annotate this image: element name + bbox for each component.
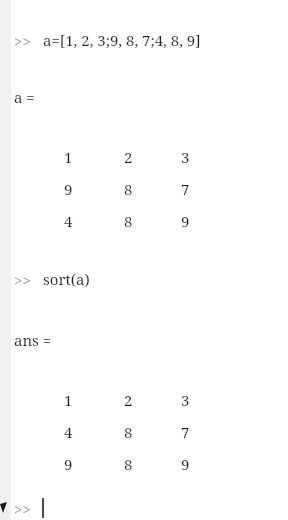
staticText: 1 bbox=[64, 390, 73, 410]
staticText: 3 bbox=[181, 147, 190, 167]
button[interactable]: Command prompt input bbox=[0, 496, 120, 520]
staticText: 9 bbox=[64, 179, 73, 199]
staticText: a=[1, 2, 3;9, 8, 7;4, 8, 9] bbox=[43, 30, 201, 50]
staticText: >> bbox=[14, 270, 31, 290]
staticText: 2 bbox=[124, 390, 133, 410]
staticText: 9 bbox=[181, 454, 190, 474]
staticText: 3 bbox=[181, 390, 190, 410]
staticText: a = bbox=[14, 87, 35, 107]
staticText: 4 bbox=[64, 211, 73, 231]
staticText: 7 bbox=[181, 422, 190, 442]
staticText: 2 bbox=[124, 147, 133, 167]
staticText: ans = bbox=[14, 330, 52, 350]
staticText: sort(a) bbox=[43, 269, 90, 289]
staticText: 1 bbox=[64, 147, 73, 167]
staticText: 8 bbox=[124, 179, 133, 199]
staticText: 8 bbox=[124, 422, 133, 442]
staticText: 9 bbox=[181, 211, 190, 231]
staticText: >> bbox=[14, 499, 31, 519]
staticText: 8 bbox=[124, 211, 133, 231]
staticText: 8 bbox=[124, 454, 133, 474]
staticText: 7 bbox=[181, 179, 190, 199]
staticText: 9 bbox=[64, 454, 73, 474]
staticText: 4 bbox=[64, 422, 73, 442]
button[interactable]: >> bbox=[0, 0, 288, 520]
staticText: >> bbox=[14, 31, 31, 51]
